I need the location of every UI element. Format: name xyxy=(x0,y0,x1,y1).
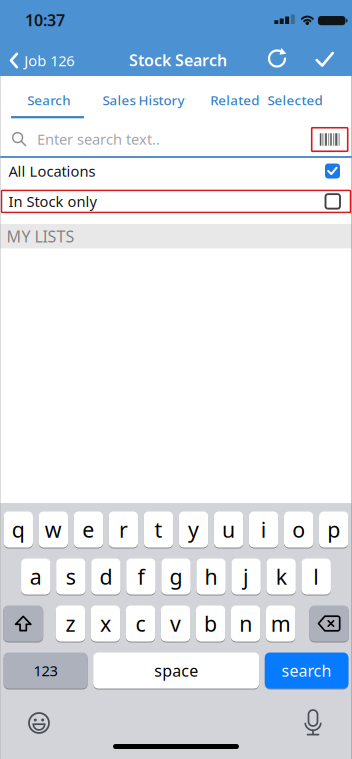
staticText: z xyxy=(65,609,75,638)
button[interactable]: 123 xyxy=(4,652,88,689)
button[interactable]: u xyxy=(214,511,243,548)
staticText: Job 126 xyxy=(24,51,74,70)
staticText: x xyxy=(100,609,111,638)
staticText: All Locations xyxy=(8,161,95,181)
staticText: j xyxy=(243,562,249,591)
staticText: Related xyxy=(210,91,259,109)
button[interactable]: j xyxy=(231,558,261,595)
staticText: g xyxy=(169,562,182,591)
button[interactable]: Enter search text.. xyxy=(0,122,300,156)
button[interactable] xyxy=(315,52,334,68)
staticText: v xyxy=(170,609,181,638)
button[interactable] xyxy=(3,605,43,642)
staticText: r xyxy=(119,515,128,544)
button[interactable]: Job 126 xyxy=(10,43,120,77)
button[interactable]: n xyxy=(231,605,260,642)
staticText: h xyxy=(204,562,217,591)
button[interactable]: space xyxy=(93,652,259,689)
button[interactable]: k xyxy=(266,558,296,595)
button[interactable]: b xyxy=(196,605,225,642)
staticText: search xyxy=(282,660,332,681)
staticText: In Stock only xyxy=(8,192,96,211)
staticText: s xyxy=(66,562,76,591)
button[interactable]: z xyxy=(56,605,85,642)
button[interactable] xyxy=(311,127,348,152)
button[interactable]: h xyxy=(196,558,226,595)
staticText: Selected xyxy=(267,91,322,109)
staticText: d xyxy=(99,562,112,591)
staticText: n xyxy=(239,609,252,638)
button[interactable]: In Stock only xyxy=(0,190,352,212)
button[interactable]: t xyxy=(144,511,173,548)
staticText: m xyxy=(271,609,291,638)
button[interactable]: d xyxy=(91,558,121,595)
button[interactable]: x xyxy=(91,605,120,642)
button[interactable] xyxy=(303,709,323,737)
staticText: a xyxy=(30,562,42,591)
button[interactable]: w xyxy=(39,511,68,548)
button[interactable]: f xyxy=(126,558,156,595)
button[interactable]: o xyxy=(284,511,313,548)
staticText: f xyxy=(137,562,144,591)
staticText: o xyxy=(292,515,305,544)
staticText: Search xyxy=(27,91,70,109)
staticText: i xyxy=(261,515,267,544)
button[interactable] xyxy=(265,46,289,70)
staticText: y xyxy=(188,515,199,544)
button[interactable]: q xyxy=(4,511,33,548)
staticText: k xyxy=(276,562,287,591)
button[interactable]: l xyxy=(301,558,331,595)
button[interactable]: Related xyxy=(210,91,259,109)
button[interactable] xyxy=(309,605,349,642)
staticText: b xyxy=(204,609,217,638)
staticText: q xyxy=(12,515,25,544)
button[interactable]: c xyxy=(126,605,155,642)
staticText: MY LISTS xyxy=(6,226,74,247)
button[interactable]: All Locations xyxy=(0,157,352,185)
staticText: space xyxy=(154,660,198,681)
button[interactable]: r xyxy=(109,511,138,548)
staticText: u xyxy=(222,515,235,544)
staticText: 10:37 xyxy=(25,9,65,31)
button[interactable]: Search xyxy=(27,91,70,109)
staticText: e xyxy=(82,515,94,544)
staticText: Stock Search xyxy=(129,49,227,71)
button[interactable]: y xyxy=(179,511,208,548)
staticText: l xyxy=(313,562,319,591)
button[interactable] xyxy=(27,711,51,735)
button[interactable]: Selected xyxy=(267,91,322,109)
button[interactable]: i xyxy=(249,511,278,548)
button[interactable]: v xyxy=(161,605,190,642)
button[interactable]: Sales History xyxy=(102,91,184,109)
button[interactable]: search xyxy=(265,652,348,689)
staticText: Enter search text.. xyxy=(37,129,160,149)
staticText: Sales History xyxy=(102,91,184,109)
staticText: 123 xyxy=(34,661,58,680)
staticText: t xyxy=(154,515,162,544)
staticText: c xyxy=(135,609,145,638)
button[interactable]: s xyxy=(56,558,85,595)
button[interactable]: a xyxy=(21,558,50,595)
button[interactable]: p xyxy=(319,511,348,548)
button[interactable]: g xyxy=(161,558,191,595)
staticText: w xyxy=(45,515,62,544)
button[interactable]: m xyxy=(266,605,295,642)
button[interactable]: e xyxy=(74,511,103,548)
staticText: p xyxy=(327,515,340,544)
